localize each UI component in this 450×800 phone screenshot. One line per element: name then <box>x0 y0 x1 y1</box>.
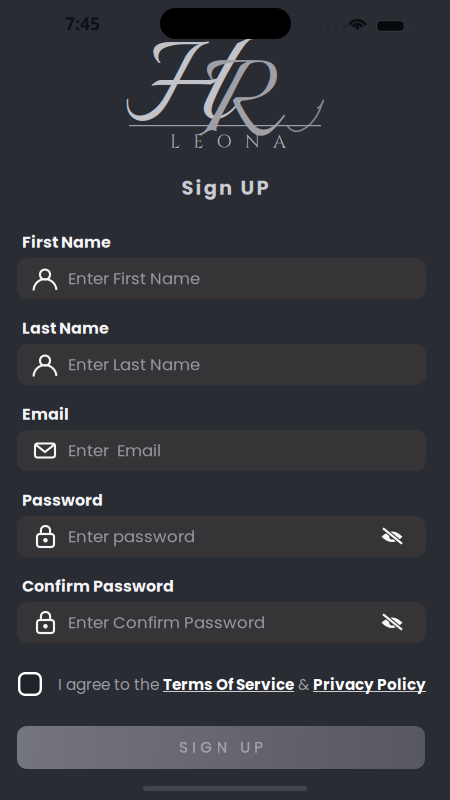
staticText: U <box>240 174 254 202</box>
staticText: 7:45 <box>65 12 100 35</box>
staticText: I <box>192 737 196 758</box>
button[interactable]: S <box>17 726 425 769</box>
button[interactable]: Enter Email <box>17 430 426 471</box>
staticText: S <box>179 737 188 758</box>
staticText: Password <box>22 489 103 511</box>
staticText: Last Name <box>22 317 109 339</box>
button[interactable]: Show password <box>381 526 403 544</box>
button[interactable]: Enter password <box>17 516 426 557</box>
staticText: Enter Confirm Password <box>68 611 265 634</box>
staticText: & <box>294 674 313 695</box>
staticText: S <box>181 174 193 202</box>
button[interactable]: I agree to the Terms Of Service & Privac… <box>18 672 42 696</box>
staticText: L <box>170 130 180 154</box>
staticText: P <box>254 737 263 758</box>
staticText: Enter password <box>68 525 195 548</box>
staticText: A <box>273 130 286 154</box>
staticText: Enter Last Name <box>68 353 200 376</box>
button[interactable]: Enter Confirm Password <box>17 602 426 643</box>
staticText: N <box>245 130 260 154</box>
staticText: E <box>193 130 203 154</box>
button[interactable]: Enter First Name <box>17 258 426 299</box>
button[interactable]: Show password <box>381 612 403 630</box>
staticText: g <box>204 174 217 202</box>
button[interactable]: I agree to the <box>58 674 426 695</box>
staticText: Email <box>22 403 69 425</box>
staticText: I agree to the <box>58 674 163 695</box>
staticText: Confirm Password <box>22 575 174 597</box>
button[interactable]: Enter Last Name <box>17 344 426 385</box>
staticText: n <box>219 174 232 202</box>
staticText: i <box>196 174 202 202</box>
staticText: First Name <box>22 231 111 253</box>
staticText: R <box>198 26 278 193</box>
staticText: Terms Of Service <box>163 674 294 695</box>
staticText: Enter First Name <box>68 267 200 290</box>
staticText: P <box>257 174 269 202</box>
staticText: O <box>216 130 231 154</box>
staticText: Enter Email <box>68 439 161 462</box>
staticText: Privacy Policy <box>313 674 426 695</box>
staticText: N <box>216 737 227 758</box>
staticText: G <box>200 737 212 758</box>
staticText: U <box>240 737 250 758</box>
staticText: H <box>126 5 235 182</box>
